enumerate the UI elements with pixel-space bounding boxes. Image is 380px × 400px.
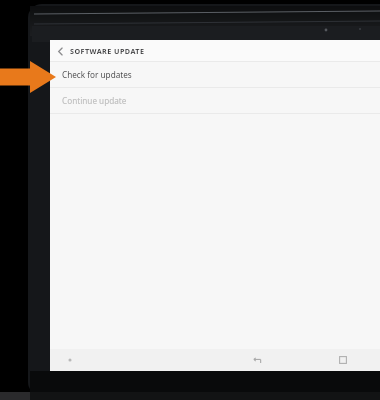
button[interactable]: Continue update xyxy=(50,88,380,113)
button[interactable]: Check for updates xyxy=(50,62,380,87)
staticText: SOFTWARE UPDATE xyxy=(70,46,145,56)
button[interactable]: Back xyxy=(234,349,280,371)
staticText: Continue update xyxy=(62,95,127,106)
button[interactable]: Hide navigation xyxy=(50,349,90,371)
button[interactable]: Back xyxy=(50,41,70,61)
staticText: Check for updates xyxy=(62,69,132,80)
button[interactable]: Recent apps xyxy=(320,349,366,371)
